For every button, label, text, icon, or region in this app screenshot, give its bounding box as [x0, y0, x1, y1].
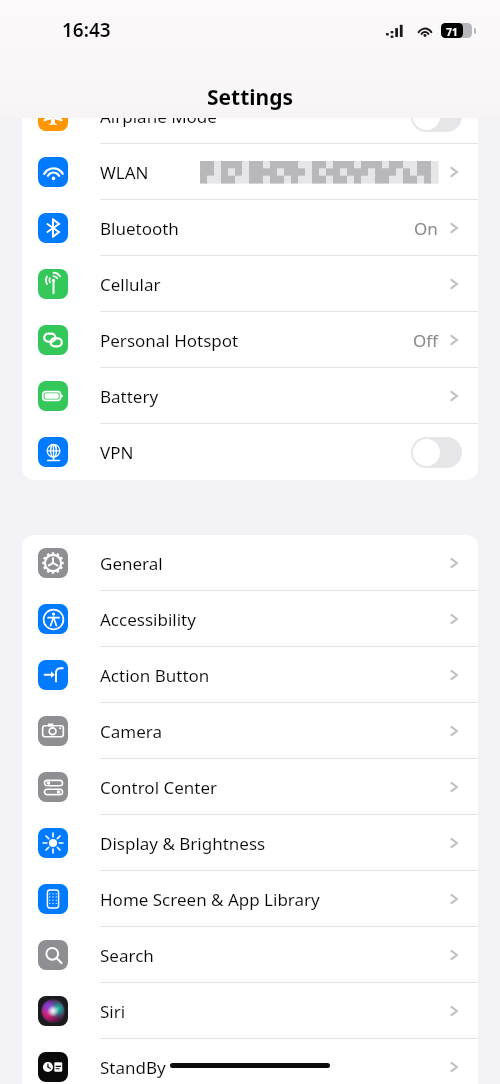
staticText: 16:43	[62, 17, 111, 43]
staticText: Camera	[100, 720, 162, 743]
staticText: On	[414, 217, 438, 240]
button[interactable]: StandBy	[22, 1039, 478, 1084]
staticText: General	[100, 552, 163, 575]
button[interactable]: Camera	[22, 703, 478, 759]
button[interactable]: Home Screen & App Library	[22, 871, 478, 927]
other: Open	[446, 947, 462, 963]
staticText: Cellular	[100, 273, 161, 296]
button[interactable]: Toggle	[411, 101, 462, 132]
other: Open	[446, 555, 462, 571]
other: Open	[446, 276, 462, 292]
staticText: Control Center	[100, 776, 218, 799]
staticText: Battery	[100, 385, 159, 408]
other: Open	[446, 332, 462, 348]
staticText: Personal Hotspot	[100, 329, 239, 352]
button[interactable]: General	[22, 535, 478, 591]
staticText: Siri	[100, 1000, 126, 1023]
staticText: Home Screen & App Library	[100, 888, 320, 911]
button[interactable]: Control Center	[22, 759, 478, 815]
staticText: Airplane Mode	[100, 105, 217, 128]
staticText: Accessibility	[100, 608, 196, 631]
staticText: Settings	[0, 83, 500, 112]
staticText: 71	[441, 25, 463, 39]
button[interactable]: Toggle	[411, 437, 462, 468]
button[interactable]: Cellular	[22, 256, 478, 312]
button[interactable]: Accessibility	[22, 591, 478, 647]
staticText: Bluetooth	[100, 217, 179, 240]
button[interactable]: Action Button	[22, 647, 478, 703]
staticText: VPN	[100, 441, 134, 464]
button[interactable]: WLAN	[22, 144, 478, 200]
other: Open	[446, 835, 462, 851]
other: Open	[446, 611, 462, 627]
staticText: WLAN	[100, 161, 149, 184]
button[interactable]: Battery	[22, 368, 478, 424]
other: Open	[446, 891, 462, 907]
other: Open	[446, 1059, 462, 1075]
other: Open	[446, 164, 462, 180]
button[interactable]: Search	[22, 927, 478, 983]
other: Open	[446, 1003, 462, 1019]
staticText: Off	[413, 329, 438, 352]
staticText: StandBy	[100, 1056, 166, 1079]
other: Open	[446, 667, 462, 683]
other: Open	[446, 388, 462, 404]
other: Open	[446, 220, 462, 236]
button[interactable]: Airplane Mode	[22, 88, 478, 144]
button[interactable]: Bluetooth	[22, 200, 478, 256]
other: Open	[446, 779, 462, 795]
staticText: Action Button	[100, 664, 210, 687]
staticText: Display & Brightness	[100, 832, 266, 855]
button[interactable]: VPN	[22, 424, 478, 480]
staticText: Search	[100, 944, 154, 967]
button[interactable]: Personal Hotspot	[22, 312, 478, 368]
button[interactable]: Siri	[22, 983, 478, 1039]
other: Open	[446, 723, 462, 739]
button[interactable]: Display & Brightness	[22, 815, 478, 871]
